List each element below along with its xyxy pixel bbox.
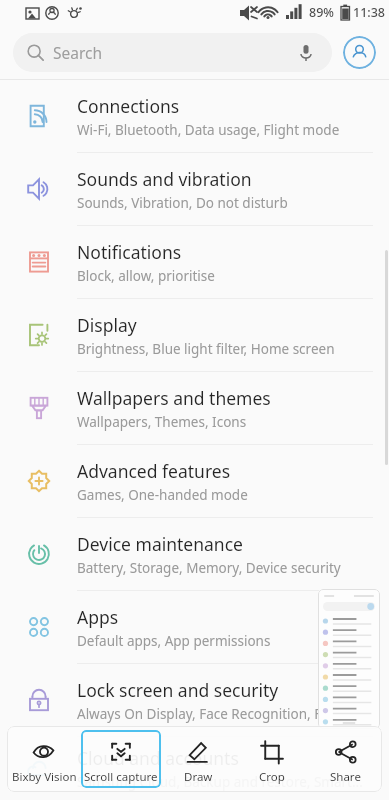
staticText: Wallpapers and themes — [77, 386, 271, 410]
staticText: Display — [77, 313, 137, 337]
staticText: Share — [330, 769, 361, 785]
button[interactable]: Bixby Vision — [7, 730, 81, 788]
button[interactable]: Voice search — [294, 41, 318, 65]
staticText: Default apps, App permissions — [77, 632, 271, 650]
staticText: Cloud and accounts — [77, 746, 239, 770]
button[interactable]: Scroll capture — [81, 730, 161, 788]
button[interactable]: Cloud and accounts — [0, 737, 389, 800]
button[interactable]: Device maintenance — [0, 518, 389, 590]
staticText: Scroll capture — [84, 769, 158, 785]
staticText: Draw — [184, 769, 213, 785]
button[interactable]: Notifications — [0, 226, 389, 298]
button[interactable]: Display — [0, 299, 389, 371]
button[interactable]: Advanced features — [0, 445, 389, 517]
staticText: Lock screen and security — [77, 678, 279, 702]
staticText: Apps — [77, 605, 119, 629]
staticText: 11:38 — [353, 4, 386, 21]
staticText: Samsung Cloud, Backup and restore, Smart… — [77, 773, 363, 791]
staticText: Games, One-handed mode — [77, 486, 248, 504]
button[interactable]: Draw — [161, 730, 235, 788]
button[interactable]: Share — [309, 730, 382, 788]
button[interactable]: Lock screen and security — [0, 664, 389, 736]
staticText: Battery, Storage, Memory, Device securit… — [77, 559, 341, 577]
staticText: Connections — [77, 94, 180, 118]
staticText: Notifications — [77, 240, 182, 264]
button[interactable]: Wallpapers and themes — [0, 372, 389, 444]
staticText: Block, allow, prioritise — [77, 267, 215, 285]
staticText: Sounds and vibration — [77, 167, 252, 191]
staticText: Search — [53, 42, 103, 63]
staticText: Crop — [259, 769, 285, 785]
staticText: Wi-Fi, Bluetooth, Data usage, Flight mod… — [77, 121, 340, 139]
staticText: Brightness, Blue light filter, Home scre… — [77, 340, 335, 358]
staticText: Wallpapers, Themes, Icons — [77, 413, 247, 431]
staticText: Advanced features — [77, 459, 231, 483]
staticText: Sounds, Vibration, Do not disturb — [77, 194, 288, 212]
staticText: Device maintenance — [77, 532, 243, 556]
button[interactable]: Account — [343, 36, 376, 69]
button[interactable]: Sounds and vibration — [0, 153, 389, 225]
staticText: Always On Display, Face Recognition, F — [77, 705, 322, 723]
staticText: Bixby Vision — [12, 769, 77, 785]
button[interactable]: Connections — [0, 80, 389, 152]
button[interactable]: Apps — [0, 591, 389, 663]
staticText: 89% — [309, 4, 334, 21]
button[interactable]: Crop — [235, 730, 309, 788]
button[interactable]: Search — [13, 33, 332, 72]
